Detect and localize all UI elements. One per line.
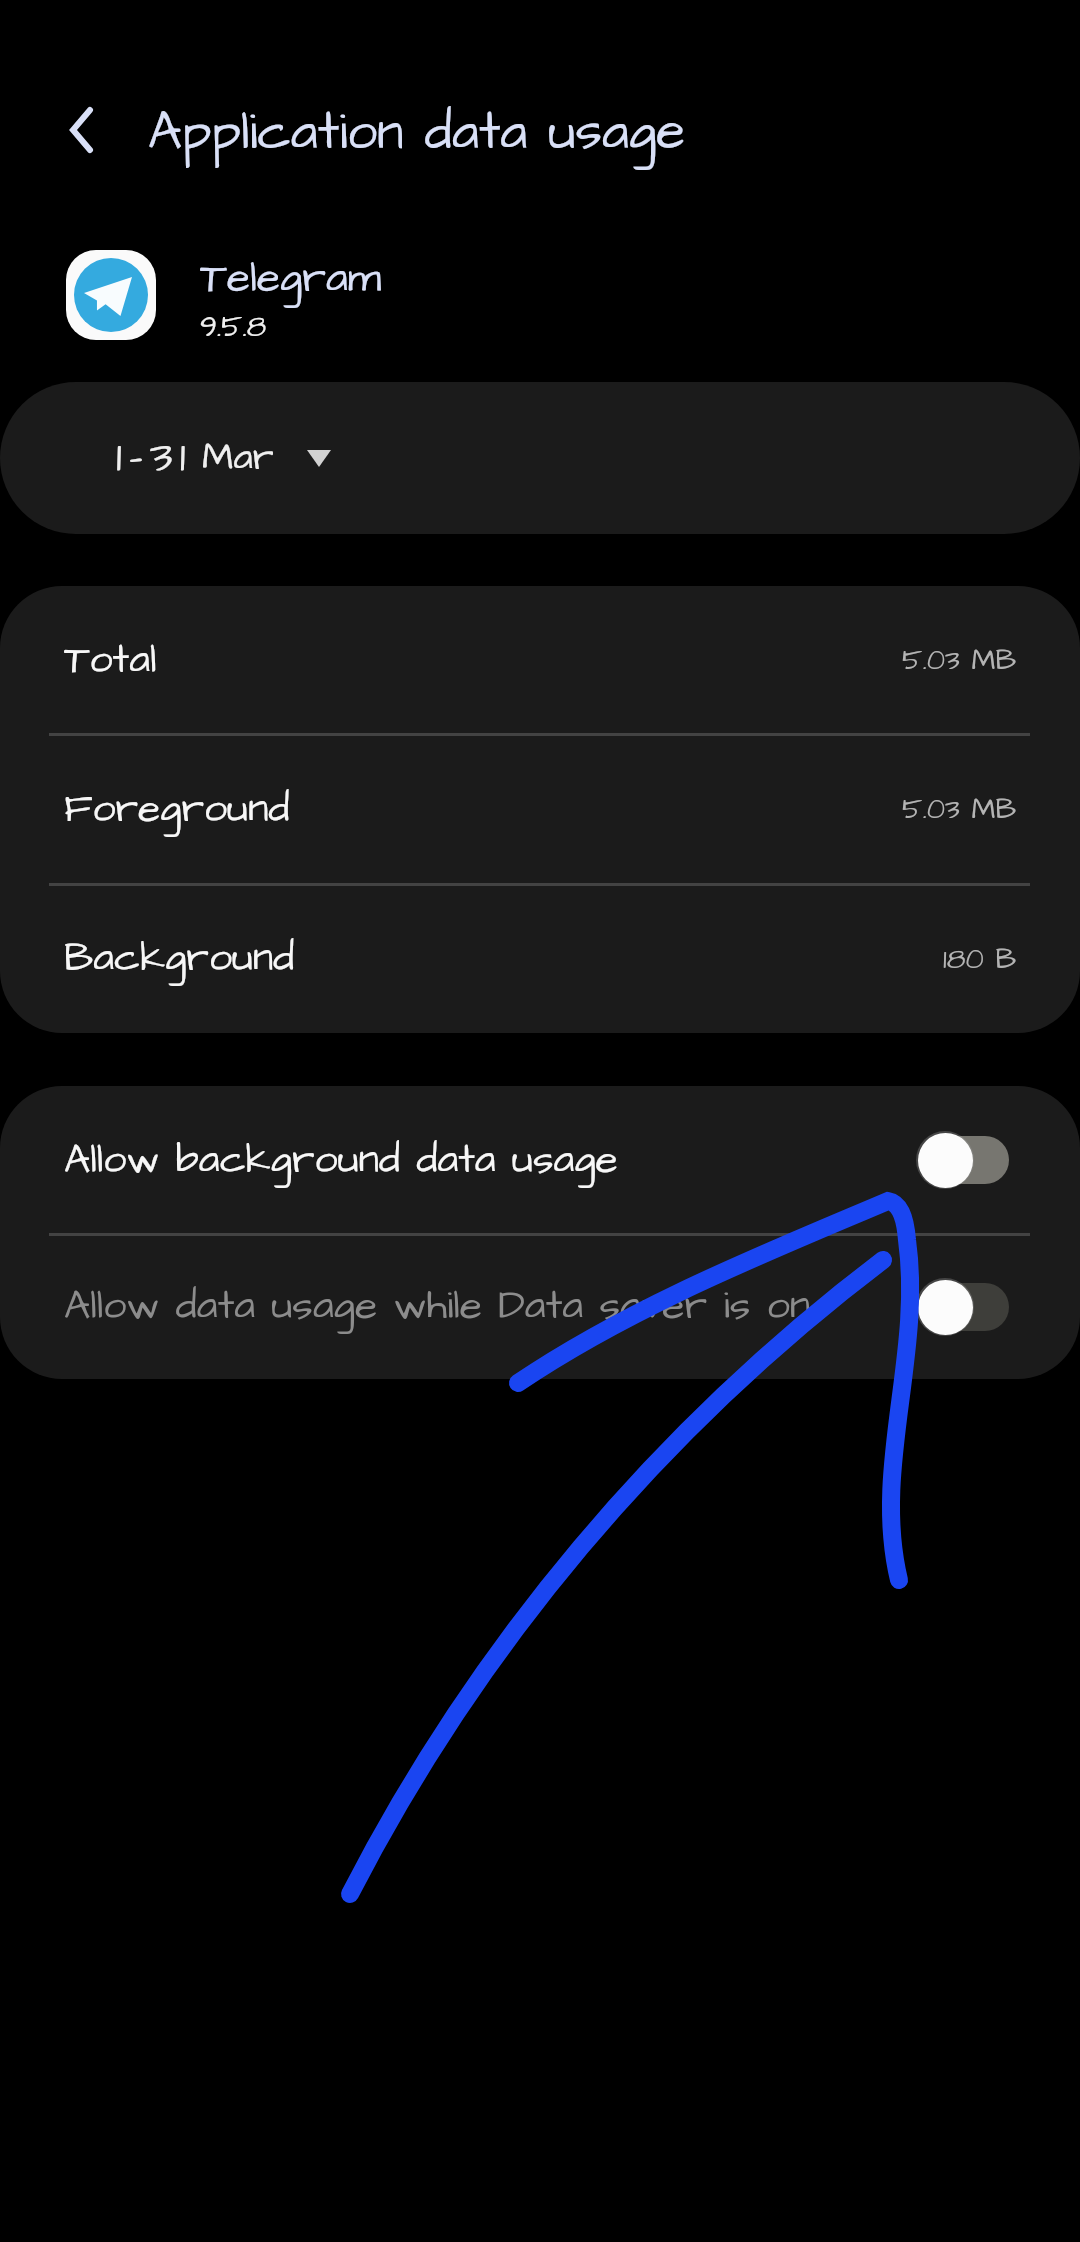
staticText: Telegram xyxy=(200,249,382,309)
button[interactable]: Foreground xyxy=(0,734,1080,884)
staticText: 5.03 MB xyxy=(902,640,1016,680)
staticText: Allow background data usage xyxy=(64,1132,618,1189)
button[interactable]: Allow data usage while Data saver is on xyxy=(0,1234,1080,1379)
button[interactable]: Total xyxy=(0,586,1080,734)
staticText: 9.5.8 xyxy=(200,306,267,348)
button[interactable]: Toggle xyxy=(916,1278,1009,1336)
staticText: Background xyxy=(64,930,295,987)
staticText: Allow data usage while Data saver is on xyxy=(64,1278,811,1335)
staticText: 5.03 MB xyxy=(902,789,1016,829)
staticText: 1–31 xyxy=(116,427,193,490)
button[interactable]: 1–31 xyxy=(0,382,1080,534)
button[interactable]: Navigate up xyxy=(44,93,118,167)
button[interactable]: Allow background data usage xyxy=(0,1086,1080,1234)
button[interactable]: Background xyxy=(0,884,1080,1033)
staticText: Application data usage xyxy=(148,96,686,170)
staticText: Foreground xyxy=(64,781,290,838)
staticText: 180 B xyxy=(942,939,1016,979)
staticText: Total xyxy=(64,632,157,689)
button[interactable]: Toggle xyxy=(916,1131,1009,1189)
staticText: Mar xyxy=(202,432,274,485)
